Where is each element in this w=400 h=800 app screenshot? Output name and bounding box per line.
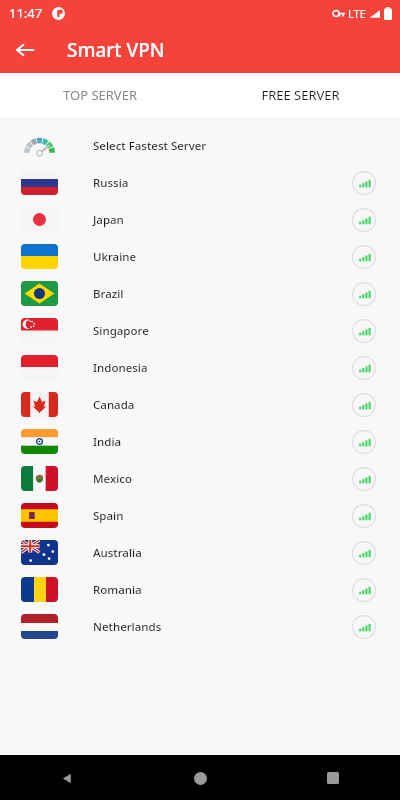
button[interactable]: Mexico: [0, 460, 400, 497]
button[interactable]: Signal strength: [352, 319, 376, 343]
button[interactable]: Select Fastest Server: [0, 127, 400, 164]
button[interactable]: Signal strength: [352, 393, 376, 417]
staticText: Smart VPN: [67, 37, 165, 63]
button[interactable]: Signal strength: [352, 504, 376, 528]
button[interactable]: Back: [47, 758, 87, 798]
button[interactable]: Signal strength: [352, 430, 376, 454]
button[interactable]: Signal strength: [352, 356, 376, 380]
button[interactable]: Home: [180, 758, 220, 798]
staticText: Netherlands: [93, 619, 352, 635]
button[interactable]: Signal strength: [352, 245, 376, 269]
button[interactable]: Japan: [0, 201, 400, 238]
button[interactable]: Spain: [0, 497, 400, 534]
button[interactable]: Signal strength: [352, 541, 376, 565]
button[interactable]: Signal strength: [352, 578, 376, 602]
button[interactable]: TOP SERVER: [0, 73, 200, 117]
staticText: Spain: [93, 508, 352, 524]
staticText: Mexico: [93, 471, 352, 487]
button[interactable]: Russia: [0, 164, 400, 201]
staticText: India: [93, 434, 352, 450]
staticText: Select Fastest Server: [93, 138, 400, 154]
staticText: 11:47: [9, 4, 43, 22]
staticText: Romania: [93, 582, 352, 598]
staticText: LTE: [348, 6, 366, 21]
staticText: Australia: [93, 545, 352, 561]
staticText: TOP SERVER: [63, 86, 137, 104]
staticText: Canada: [93, 397, 352, 413]
button[interactable]: Australia: [0, 534, 400, 571]
staticText: Ukraine: [93, 249, 352, 265]
button[interactable]: Canada: [0, 386, 400, 423]
button[interactable]: Indonesia: [0, 349, 400, 386]
button[interactable]: FREE SERVER: [200, 73, 400, 117]
button[interactable]: Signal strength: [352, 615, 376, 639]
button[interactable]: Netherlands: [0, 608, 400, 645]
button[interactable]: Ukraine: [0, 238, 400, 275]
staticText: FREE SERVER: [261, 86, 340, 104]
button[interactable]: Brazil: [0, 275, 400, 312]
staticText: Singapore: [93, 323, 352, 339]
button[interactable]: Romania: [0, 571, 400, 608]
button[interactable]: Singapore: [0, 312, 400, 349]
button[interactable]: Recents: [313, 758, 353, 798]
button[interactable]: Signal strength: [352, 467, 376, 491]
button[interactable]: Back: [6, 31, 44, 69]
button[interactable]: Signal strength: [352, 282, 376, 306]
button[interactable]: Signal strength: [352, 208, 376, 232]
button[interactable]: India: [0, 423, 400, 460]
staticText: Brazil: [93, 286, 352, 302]
button[interactable]: Signal strength: [352, 171, 376, 195]
staticText: Indonesia: [93, 360, 352, 376]
staticText: Russia: [93, 175, 352, 191]
staticText: Japan: [93, 212, 352, 228]
